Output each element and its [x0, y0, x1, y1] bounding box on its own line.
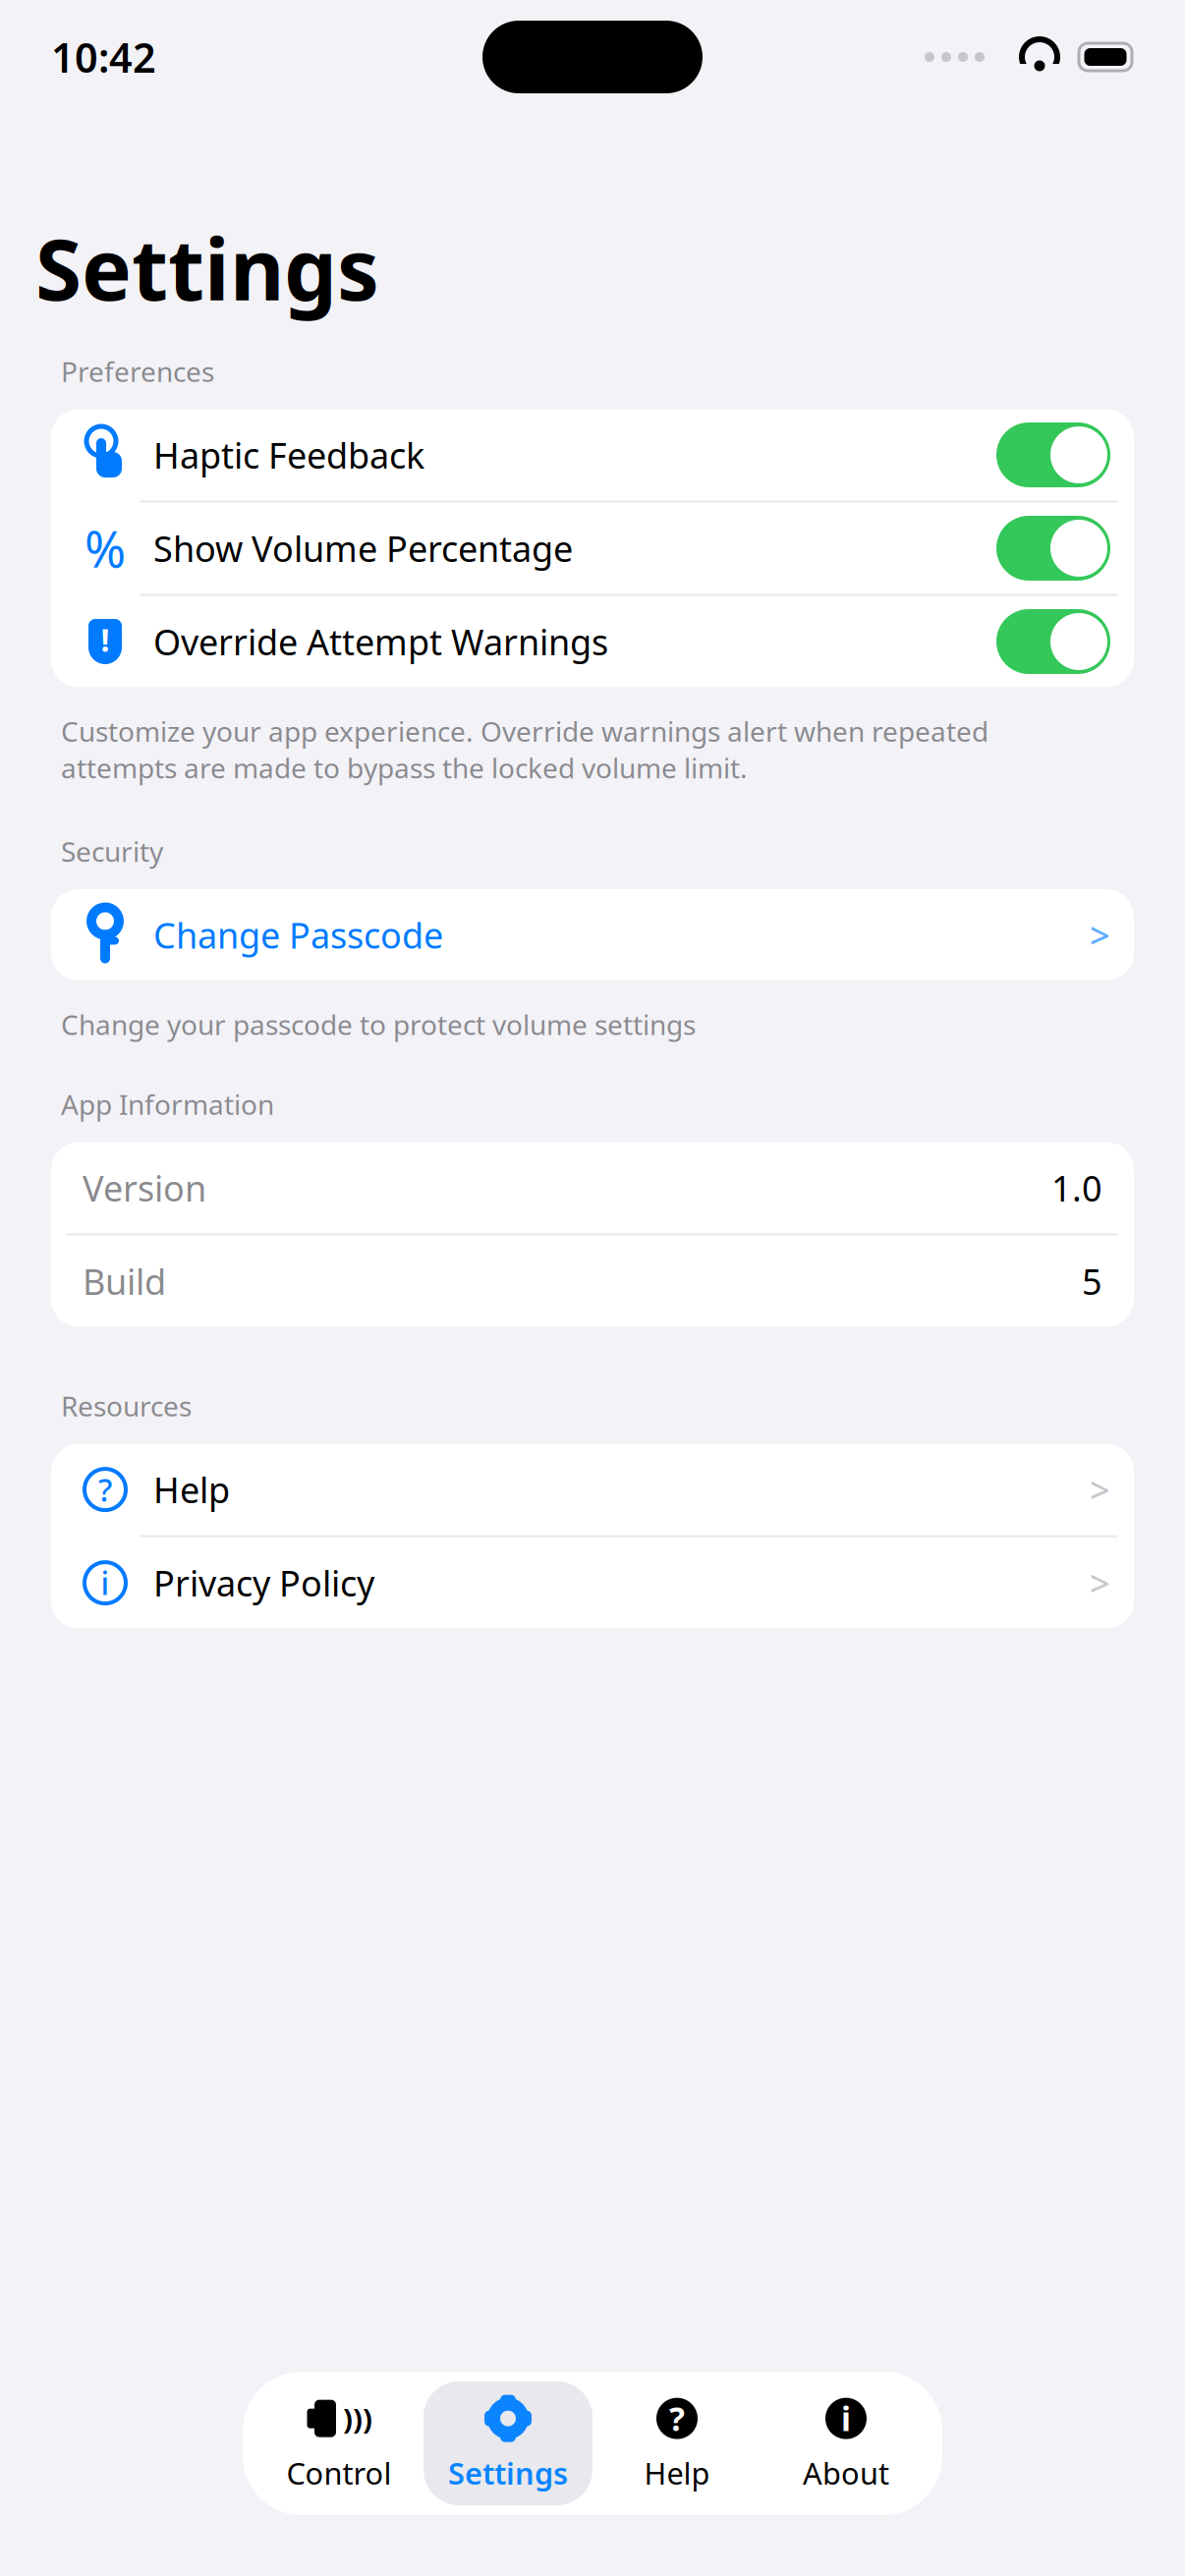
staticText: > — [1090, 1559, 1110, 1606]
button[interactable]: i — [51, 1537, 1134, 1629]
staticText: Control — [286, 2453, 392, 2493]
button[interactable]: ! — [51, 596, 1134, 687]
staticText: i — [101, 1562, 110, 1604]
button[interactable]: ))) — [254, 2381, 423, 2505]
staticText: 10:42 — [51, 30, 156, 84]
button[interactable]: i — [762, 2381, 931, 2505]
staticText: Settings — [448, 2453, 568, 2493]
staticText: Preferences — [61, 353, 214, 390]
staticText: ? — [98, 1469, 112, 1510]
staticText: Help — [153, 1466, 230, 1513]
staticText: About — [803, 2453, 889, 2493]
staticText: Change Passcode — [153, 911, 443, 958]
staticText: ? — [669, 2397, 685, 2440]
staticText: Settings — [35, 212, 379, 324]
staticText: Customize your app experience. Override … — [61, 713, 988, 786]
staticText: 1.0 — [1051, 1164, 1102, 1211]
staticText: Build — [83, 1258, 166, 1305]
button[interactable]: Settings — [423, 2381, 592, 2505]
button[interactable]: Haptic Feedback — [51, 409, 1134, 501]
staticText: Security — [61, 833, 163, 870]
staticText: Haptic Feedback — [153, 431, 424, 478]
staticText: Override Attempt Warnings — [153, 618, 608, 665]
staticText: Privacy Policy — [153, 1559, 374, 1606]
staticText: > — [1090, 911, 1110, 958]
staticText: > — [1090, 1466, 1110, 1513]
staticText: ))) — [343, 2399, 372, 2438]
staticText: 5 — [1082, 1258, 1102, 1305]
staticText: App Information — [61, 1086, 274, 1122]
staticText: Show Volume Percentage — [153, 525, 573, 572]
button[interactable]: ? — [51, 1444, 1134, 1535]
button[interactable]: Change Passcode — [51, 889, 1134, 980]
button[interactable]: % — [51, 503, 1134, 594]
button[interactable]: ? — [592, 2381, 762, 2505]
staticText: Version — [83, 1164, 206, 1211]
staticText: % — [85, 515, 126, 581]
staticText: Help — [644, 2453, 710, 2493]
staticText: Resources — [61, 1388, 192, 1424]
staticText: i — [841, 2397, 851, 2440]
staticText: ! — [101, 619, 110, 661]
staticText: Change your passcode to protect volume s… — [61, 1006, 696, 1043]
